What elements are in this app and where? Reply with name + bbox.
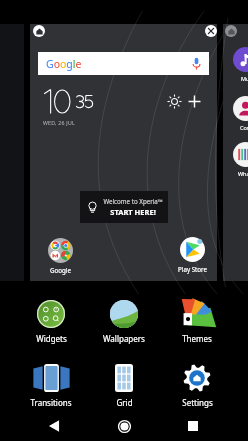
button[interactable]: Google	[40, 238, 80, 274]
button[interactable]: Wallpapers	[94, 300, 154, 344]
button[interactable]: Back	[34, 411, 74, 441]
button[interactable]: Recent apps	[173, 411, 213, 441]
staticText: Welcome to Xperia™	[103, 197, 163, 205]
staticText: WED, 26 JUL	[43, 119, 75, 126]
button[interactable]: Close	[205, 25, 217, 37]
button[interactable]: Google search	[38, 52, 209, 75]
staticText: Con	[240, 124, 248, 131]
staticText: What	[238, 170, 248, 177]
button[interactable]: Transitions	[21, 364, 81, 408]
staticText: Wallpapers	[103, 333, 145, 344]
staticText: Settings	[182, 397, 213, 408]
staticText: Google	[46, 57, 82, 71]
button[interactable]: Settings	[167, 364, 227, 408]
button[interactable]: Play Store	[172, 237, 212, 273]
button[interactable]: Current home page	[33, 25, 45, 37]
button[interactable]: Themes	[167, 300, 227, 344]
button[interactable]: Welcome to Xperia™	[80, 191, 168, 223]
staticText: Mu	[241, 75, 248, 82]
staticText: Widgets	[36, 333, 67, 344]
button[interactable]: Home	[104, 411, 144, 441]
staticText: Grid	[116, 397, 133, 408]
staticText: Google	[50, 266, 71, 274]
staticText: START HERE!	[110, 207, 156, 217]
button[interactable]: Widgets	[21, 300, 81, 344]
staticText: Play Store	[178, 265, 207, 273]
button[interactable]: Grid	[94, 364, 154, 408]
staticText: Themes	[182, 333, 212, 344]
staticText: Transitions	[30, 397, 72, 408]
